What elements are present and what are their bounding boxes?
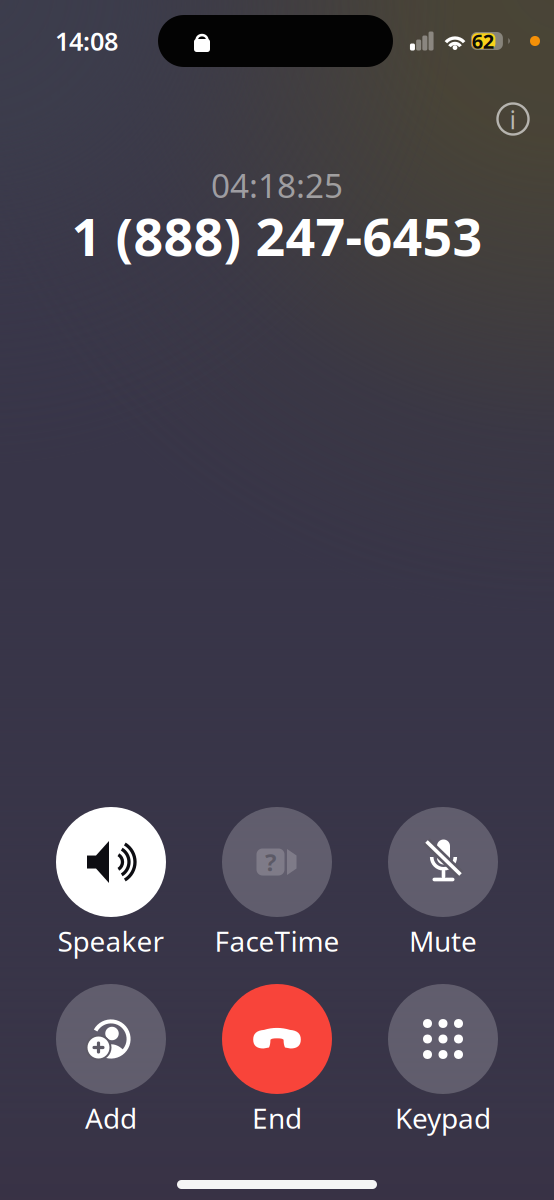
staticText: 62: [472, 28, 494, 54]
staticText: 1 (888) 247-6453: [71, 201, 482, 270]
staticText: Speaker: [57, 922, 164, 960]
staticText: Keypad: [395, 1099, 491, 1137]
staticText: FaceTime: [214, 922, 339, 960]
staticText: 04:18:25: [211, 163, 343, 207]
button[interactable]: Keypad: [388, 984, 498, 1131]
button[interactable]: Add call: [56, 984, 166, 1131]
staticText: 14:08: [55, 24, 118, 58]
staticText: Add: [85, 1099, 137, 1137]
button[interactable]: Speaker: [56, 807, 166, 954]
staticText: ?: [265, 846, 276, 878]
button[interactable]: Call info: [490, 96, 536, 142]
staticText: End: [252, 1099, 302, 1137]
button[interactable]: FaceTime: [222, 807, 332, 954]
button[interactable]: End call: [222, 984, 332, 1131]
staticText: i: [509, 103, 516, 136]
button[interactable]: Mute: [388, 807, 498, 954]
staticText: Mute: [409, 922, 477, 960]
